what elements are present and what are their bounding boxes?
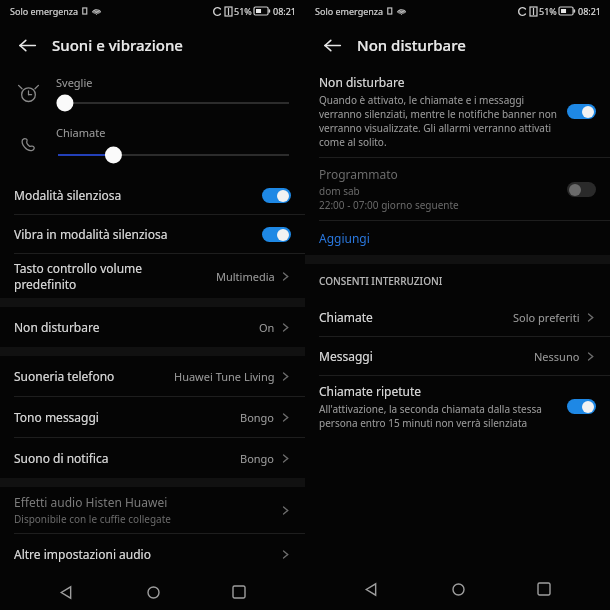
staticText: Chiamate ripetute (319, 383, 422, 399)
button[interactable]: Non disturbare (305, 68, 610, 157)
staticText: Solo emergenza (10, 5, 79, 17)
button[interactable]: Toggle on (567, 399, 596, 414)
button[interactable]: Tasto controllo volume (0, 254, 305, 298)
staticText: Solo emergenza (315, 5, 384, 17)
button[interactable]: Back (317, 30, 347, 60)
staticText: 51% (234, 5, 252, 17)
button[interactable]: Back (12, 30, 42, 60)
button[interactable]: Toggle on (262, 227, 291, 242)
staticText: Vibra in modalità silenziosa (14, 226, 168, 242)
button[interactable]: Vibra in modalità silenziosa (0, 215, 305, 253)
staticText: Chiamate (56, 125, 106, 140)
staticText: Sveglie (56, 75, 93, 90)
button[interactable]: Back (351, 569, 391, 609)
staticText: Tasto controllo volume (14, 260, 143, 276)
button[interactable]: Aggiungi (305, 221, 610, 255)
staticText: Effetti audio Histen Huawei (14, 494, 168, 510)
staticText: Altre impostazioni audio (14, 546, 151, 562)
button[interactable]: Altre impostazioni audio (0, 534, 305, 574)
button[interactable]: Suoneria telefono (0, 356, 305, 396)
button[interactable]: Toggle on (567, 104, 596, 119)
button[interactable]: Back (46, 574, 86, 610)
button[interactable]: Non disturbare (0, 307, 305, 347)
staticText: All'attivazione, la seconda chiamata dal… (319, 402, 557, 430)
button[interactable]: Messaggi (305, 337, 610, 375)
staticText: 51% (539, 5, 557, 17)
staticText: Programmato (319, 166, 398, 182)
button[interactable]: Chiamate ripetute (305, 376, 610, 438)
staticText: predefinito (14, 276, 77, 292)
staticText: Suoneria telefono (14, 368, 115, 384)
button[interactable]: Toggle on (262, 188, 291, 203)
staticText: 22:00 - 07:00 giorno seguente (319, 198, 459, 212)
button[interactable]: Suono di notifica (0, 438, 305, 478)
staticText: Chiamate (319, 309, 373, 325)
staticText: 08:21 (578, 5, 602, 17)
staticText: Tono messaggi (14, 409, 99, 425)
staticText: Non disturbare (357, 35, 466, 55)
button[interactable]: Recent apps (524, 569, 564, 609)
staticText: Aggiungi (319, 230, 370, 246)
button[interactable]: Modalità silenziosa (0, 176, 305, 214)
staticText: Multimedia (216, 269, 275, 284)
button[interactable]: Toggle off (567, 182, 596, 197)
staticText: Huawei Tune Living (174, 369, 275, 384)
staticText: Disponibile con le cuffie collegate (14, 512, 171, 526)
staticText: On (259, 320, 275, 335)
staticText: Suono di notifica (14, 450, 109, 466)
staticText: dom sab (319, 184, 360, 198)
button[interactable]: Recent apps (219, 574, 259, 610)
staticText: Solo preferiti (513, 310, 580, 325)
staticText: Bongo (240, 410, 275, 425)
button[interactable]: Home (133, 574, 173, 610)
button[interactable]: Programmato (305, 158, 610, 220)
staticText: Suoni e vibrazione (52, 35, 183, 55)
staticText: Nessuno (534, 349, 580, 364)
staticText: Non disturbare (319, 74, 405, 90)
staticText: CONSENTI INTERRUZIONI (319, 274, 443, 288)
staticText: 08:21 (273, 5, 297, 17)
staticText: Quando è attivato, le chiamate e i messa… (319, 93, 557, 149)
button[interactable]: Home (438, 569, 478, 609)
staticText: Modalità silenziosa (14, 187, 122, 203)
button[interactable]: Tono messaggi (0, 397, 305, 437)
staticText: Bongo (240, 451, 275, 466)
staticText: Non disturbare (14, 319, 100, 335)
button[interactable]: Effetti audio Histen Huawei (0, 487, 305, 533)
button[interactable]: Chiamate (305, 298, 610, 336)
staticText: Messaggi (319, 348, 373, 364)
